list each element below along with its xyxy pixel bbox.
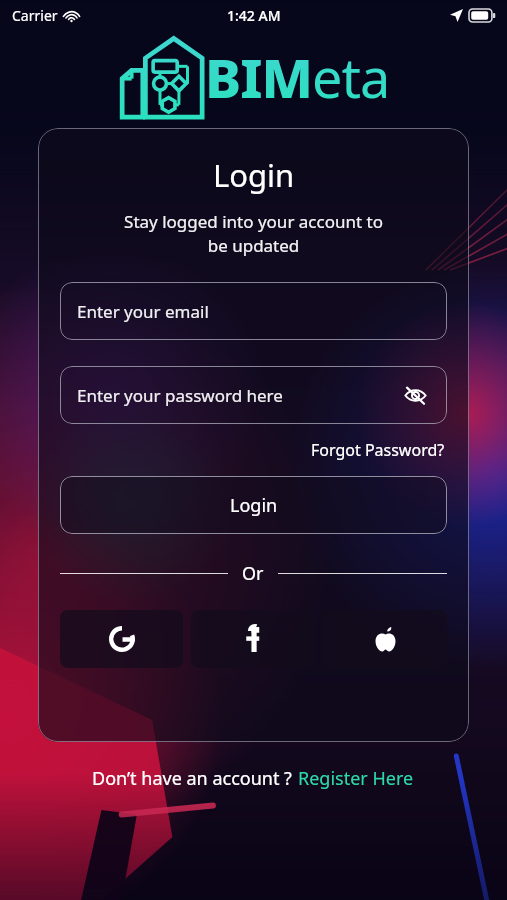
staticText: Stay logged into your account to be upda… [124,210,383,257]
button[interactable]: Login [60,476,447,534]
button[interactable]: Sign in with Apple [323,610,447,668]
staticText: Register Here [298,766,414,791]
staticText: Login [230,493,278,518]
button[interactable]: Show password [400,380,430,410]
staticText: Or [242,561,264,586]
staticText: Forgot Password? [311,439,445,461]
staticText: 1:42 AM [227,6,281,25]
button[interactable]: Sign in with Google [60,610,183,668]
button[interactable]: Register Here [297,764,415,793]
staticText: Enter your email [77,300,209,323]
staticText: Carrier [12,6,58,25]
button[interactable]: Enter your password here [60,366,447,424]
button[interactable]: Sign in with Facebook [191,610,315,668]
staticText: Don’t have an account ? [92,766,297,791]
button[interactable]: Forgot Password? [309,437,447,463]
button[interactable]: Enter your email [60,282,447,340]
staticText: Enter your password here [77,384,283,407]
staticText: Login [213,154,295,196]
staticText: BIMeta [205,40,390,114]
